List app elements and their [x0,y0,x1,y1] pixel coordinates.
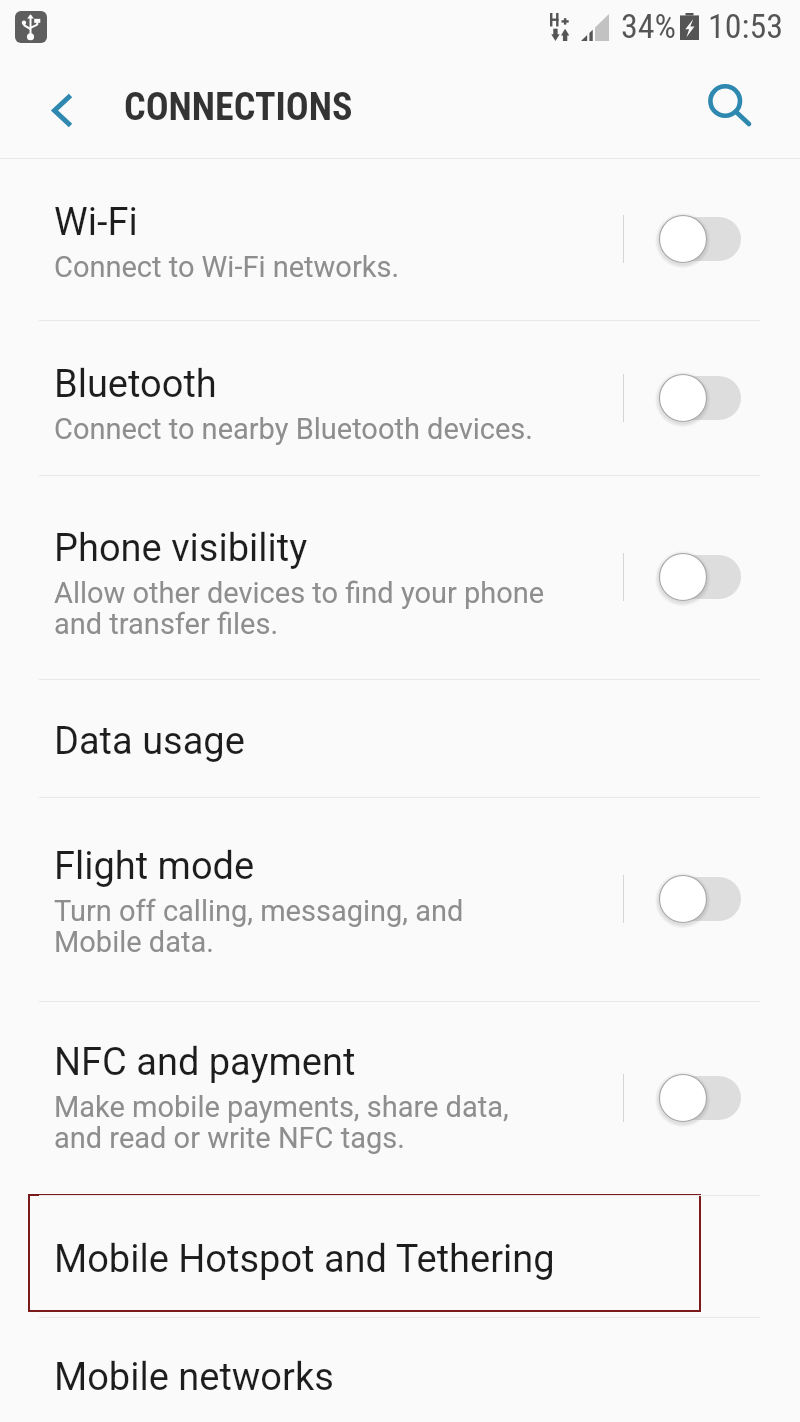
button[interactable]: NFC and payment [0,1001,800,1195]
button[interactable]: Toggle NFC and payment [657,1072,743,1124]
button[interactable]: Toggle Phone visibility [657,551,743,603]
staticText: and read or write NFC tags. [54,1121,405,1155]
button[interactable]: Search [704,79,770,145]
staticText: Connect to Wi-Fi networks. [54,250,400,284]
staticText: Mobile Hotspot and Tethering [54,1237,555,1282]
staticText: Wi-Fi [54,200,138,245]
button[interactable]: Data usage [0,679,800,797]
button[interactable]: Mobile Hotspot and Tethering [0,1195,800,1317]
staticText: Data usage [54,719,245,764]
staticText: 10:53 [708,6,784,46]
staticText: Phone visibility [54,526,308,571]
button[interactable]: Toggle Bluetooth [657,372,743,424]
button[interactable]: Back [29,77,95,143]
button[interactable]: Wi-Fi [0,158,800,320]
button[interactable]: Toggle Wi-Fi [657,213,743,265]
staticText: and transfer files. [54,607,279,641]
button[interactable]: Flight mode [0,797,800,1001]
staticText: 34% [621,6,677,46]
staticText: Bluetooth [54,362,217,407]
button[interactable]: Mobile networks [0,1317,800,1422]
staticText: Connect to nearby Bluetooth devices. [54,412,533,446]
staticText: Mobile networks [54,1355,334,1400]
button[interactable]: Phone visibility [0,475,800,679]
staticText: Allow other devices to find your phone [54,576,545,610]
staticText: NFC and payment [54,1040,356,1085]
staticText: Turn off calling, messaging, and [54,894,464,928]
staticText: Mobile data. [54,925,214,959]
staticText: Make mobile payments, share data, [54,1090,509,1124]
staticText: Flight mode [54,844,255,889]
button[interactable]: Bluetooth [0,320,800,475]
button[interactable]: Toggle Flight mode [657,873,743,925]
staticText: CONNECTIONS [124,85,353,130]
